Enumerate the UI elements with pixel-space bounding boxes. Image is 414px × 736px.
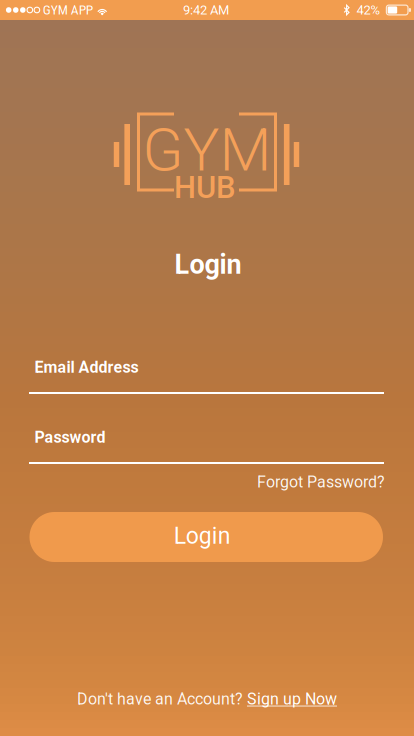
staticText: 42% — [350, 2, 386, 18]
staticText: Login — [174, 522, 231, 549]
button[interactable]: Forgot Password? — [257, 470, 385, 494]
staticText: Sign up Now — [247, 690, 337, 708]
staticText: Email Address — [34, 358, 138, 377]
button[interactable]: Login — [29, 512, 383, 562]
staticText: HUB — [174, 169, 236, 206]
staticText: GYM APP — [40, 2, 96, 18]
staticText: 9:42 AM — [183, 2, 229, 18]
staticText: GYM — [142, 115, 271, 185]
staticText: Login — [174, 249, 241, 280]
staticText: Don't have an Account? — [77, 690, 247, 708]
staticText: Password — [34, 428, 105, 447]
button[interactable]: Sign up Now — [247, 690, 337, 708]
staticText: Forgot Password? — [257, 473, 385, 491]
